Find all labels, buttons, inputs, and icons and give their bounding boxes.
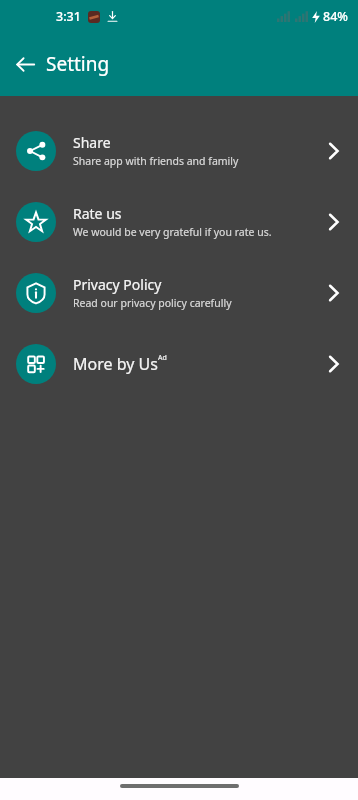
staticText: Ad bbox=[158, 353, 167, 363]
button[interactable]: Share bbox=[0, 115, 358, 186]
staticText: Share bbox=[73, 133, 111, 152]
button[interactable]: Privacy Policy bbox=[0, 257, 358, 328]
staticText: 3:31 bbox=[56, 8, 81, 25]
staticText: Share app with friends and family bbox=[73, 154, 239, 168]
staticText: Setting bbox=[46, 51, 110, 77]
staticText: Read our privacy policy carefully bbox=[73, 296, 232, 310]
staticText: We would be very grateful if you rate us… bbox=[73, 225, 272, 239]
button[interactable]: More by Us bbox=[0, 328, 358, 399]
staticText: 84% bbox=[323, 8, 348, 25]
staticText: More by Us bbox=[73, 353, 158, 375]
button[interactable]: Rate us bbox=[0, 186, 358, 257]
staticText: Rate us bbox=[73, 204, 122, 223]
staticText: Privacy Policy bbox=[73, 275, 162, 294]
button[interactable]: Back bbox=[8, 47, 42, 81]
